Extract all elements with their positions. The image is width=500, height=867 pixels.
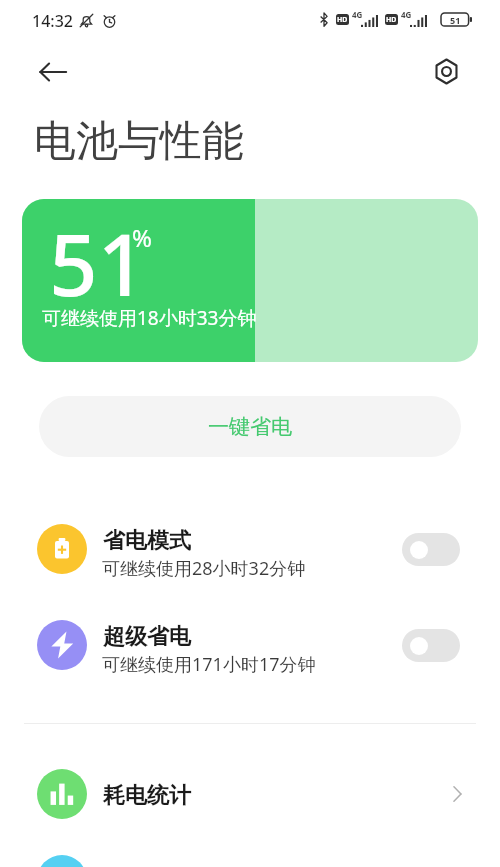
button[interactable]: 耗电统计 xyxy=(0,769,500,819)
staticText: 可继续使用171小时17分钟 xyxy=(102,652,316,677)
button[interactable]: 超级省电 开关 xyxy=(402,629,460,662)
button[interactable]: 省电模式 开关 xyxy=(402,533,460,566)
staticText: % xyxy=(132,221,152,254)
button[interactable]: 51 xyxy=(22,199,478,362)
staticText: HD xyxy=(337,15,348,25)
staticText: 电池与性能 xyxy=(34,115,244,168)
button[interactable]: 省电模式 xyxy=(0,524,500,574)
staticText: 耗电统计 xyxy=(103,782,191,810)
button[interactable]: 超级省电 xyxy=(0,620,500,670)
staticText: 51 xyxy=(49,205,147,321)
staticText: 4G xyxy=(352,9,363,20)
button[interactable]: 应用配置 xyxy=(0,855,500,867)
button[interactable]: Back xyxy=(33,52,73,92)
button[interactable]: Settings xyxy=(426,51,466,91)
staticText: 省电模式 xyxy=(103,527,191,555)
button[interactable]: 一键省电 xyxy=(39,396,461,457)
staticText: 可继续使用18小时33分钟 xyxy=(42,305,257,331)
staticText: 超级省电 xyxy=(103,623,191,651)
staticText: 可继续使用28小时32分钟 xyxy=(102,556,306,581)
staticText: 4G xyxy=(401,9,412,20)
staticText: 一键省电 xyxy=(208,414,292,440)
staticText: 51 xyxy=(450,14,461,26)
staticText: 14:32 xyxy=(32,10,73,32)
staticText: HD xyxy=(386,15,397,25)
